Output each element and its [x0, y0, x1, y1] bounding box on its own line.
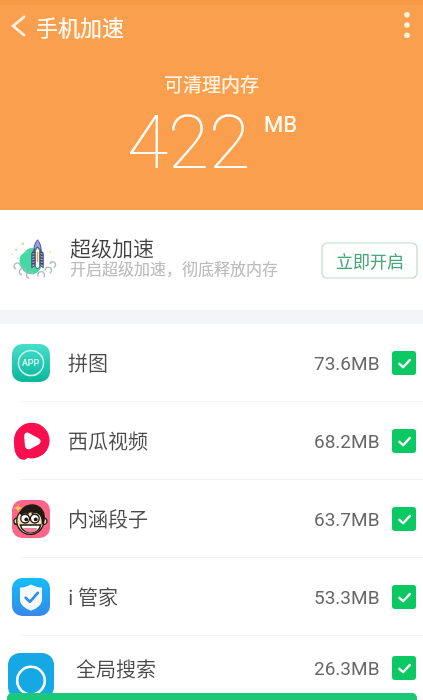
- staticText: 内涵段子: [68, 504, 314, 533]
- button[interactable]: Selected: [392, 507, 416, 531]
- staticText: 422: [127, 98, 251, 186]
- button[interactable]: APP: [0, 324, 423, 401]
- button[interactable]: More options: [391, 4, 423, 46]
- staticText: 超级加速: [70, 232, 154, 262]
- button[interactable]: 西瓜视频: [0, 402, 423, 479]
- button[interactable]: Back: [0, 5, 36, 47]
- button[interactable]: 超级加速: [0, 210, 423, 310]
- staticText: 63.7MB: [314, 508, 380, 530]
- staticText: 西瓜视频: [68, 426, 314, 455]
- staticText: 可清理内存: [164, 70, 260, 98]
- button[interactable]: i 管家: [0, 558, 423, 635]
- staticText: 拼图: [68, 348, 314, 377]
- button[interactable]: 内涵段子: [0, 480, 423, 557]
- button[interactable]: 一键加速: [7, 693, 417, 700]
- button[interactable]: Selected: [392, 351, 416, 375]
- staticText: 立即开启: [336, 248, 404, 273]
- staticText: 全局搜索: [76, 654, 314, 683]
- button[interactable]: 立即开启: [322, 243, 417, 278]
- staticText: 53.3MB: [314, 586, 380, 608]
- button[interactable]: Selected: [392, 585, 416, 609]
- staticText: 开启超级加速，彻底释放内存: [70, 256, 279, 279]
- button[interactable]: 全局搜索: [0, 636, 423, 700]
- staticText: i 管家: [68, 582, 314, 611]
- staticText: APP: [22, 358, 40, 369]
- button[interactable]: Selected: [392, 429, 416, 453]
- button[interactable]: Selected: [392, 656, 416, 680]
- staticText: 26.3MB: [314, 657, 380, 679]
- staticText: 73.6MB: [314, 352, 380, 374]
- staticText: 手机加速: [36, 10, 125, 42]
- staticText: 68.2MB: [314, 430, 380, 452]
- staticText: MB: [264, 112, 297, 138]
